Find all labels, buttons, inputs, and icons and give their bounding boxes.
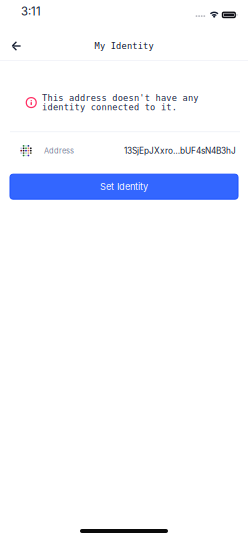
staticText: 3:11 bbox=[21, 5, 41, 18]
button[interactable]: Back bbox=[2, 32, 30, 60]
staticText: This address doesn't have any bbox=[42, 93, 198, 103]
staticText: Address bbox=[44, 146, 74, 155]
staticText: identity connected to it. bbox=[42, 102, 177, 112]
button[interactable]: Set Identity bbox=[10, 174, 238, 199]
staticText: 13SjEpJXxro…bUF4sN4B3hJ bbox=[124, 146, 236, 156]
staticText: My Identity bbox=[94, 41, 153, 51]
button[interactable]: Address bbox=[0, 132, 248, 169]
staticText: Set Identity bbox=[100, 181, 148, 192]
